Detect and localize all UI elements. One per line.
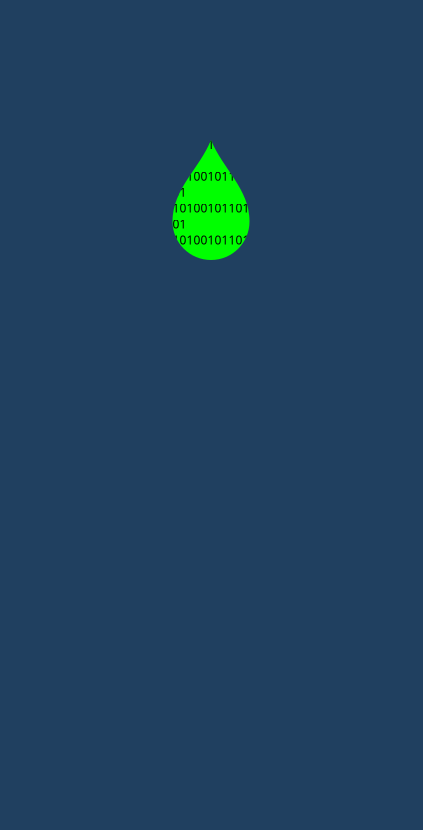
- staticText: 1010010110101: [172, 168, 249, 200]
- staticText: 1010010110101: [172, 200, 249, 232]
- staticText: 1010010110101: [172, 232, 249, 264]
- staticText: 1010010110101: [172, 136, 249, 168]
